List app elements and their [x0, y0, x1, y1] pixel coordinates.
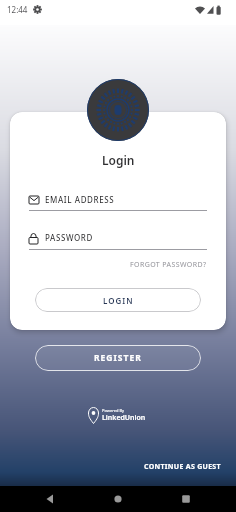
staticText: PASSWORD: [45, 232, 93, 243]
staticText: Powered By: [102, 408, 125, 413]
button[interactable]: [42, 491, 58, 507]
button[interactable]: REGISTER: [35, 345, 201, 371]
staticText: EMAIL ADDRESS: [45, 194, 115, 205]
staticText: LOGIN: [103, 295, 134, 306]
staticText: REGISTER: [94, 352, 142, 364]
button[interactable]: [87, 79, 149, 141]
staticText: 12:44: [7, 4, 28, 15]
button[interactable]: [178, 491, 194, 507]
button[interactable]: LOGIN: [35, 288, 201, 312]
button[interactable]: FORGOT PASSWORD?: [130, 260, 207, 270]
staticText: LinkedUnion: [102, 413, 146, 423]
staticText: CONTINUE AS GUEST: [144, 462, 221, 472]
button[interactable]: CONTINUE AS GUEST: [140, 458, 225, 476]
staticText: FORGOT PASSWORD?: [130, 260, 207, 270]
button[interactable]: Powered By: [88, 406, 150, 426]
button[interactable]: [110, 491, 126, 507]
staticText: Login: [102, 152, 135, 168]
